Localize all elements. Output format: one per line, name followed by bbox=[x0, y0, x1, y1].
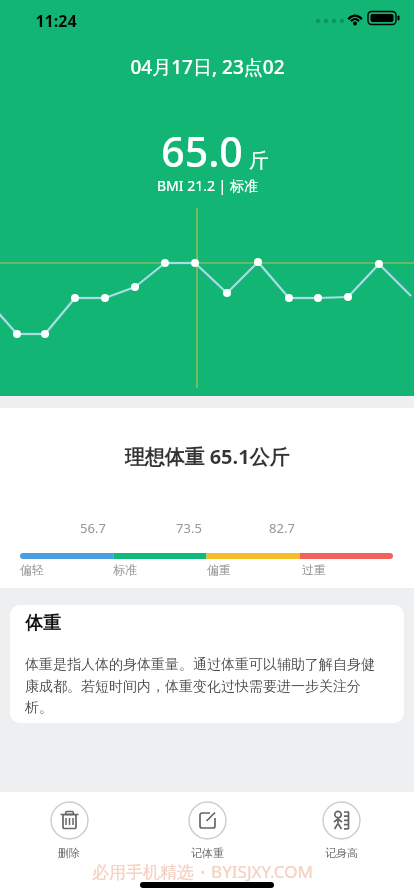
staticText: 理想体重 65.1公斤 bbox=[124, 443, 290, 470]
staticText: 删除 bbox=[58, 846, 80, 860]
staticText: 标准 bbox=[113, 562, 137, 577]
button[interactable]: 删除 bbox=[39, 801, 99, 860]
staticText: 11:24 bbox=[35, 10, 77, 32]
staticText: BMI 21.2 | 标准 bbox=[157, 176, 258, 195]
staticText: 偏轻 bbox=[20, 562, 44, 577]
staticText: 记体重 bbox=[191, 846, 224, 860]
staticText: 斤 bbox=[249, 148, 269, 173]
button[interactable]: 记身高 bbox=[311, 801, 371, 860]
staticText: 体重 bbox=[25, 612, 61, 635]
staticText: 必用手机精选・BYISJXY.COM bbox=[92, 860, 313, 883]
staticText: 56.7 bbox=[80, 519, 106, 537]
staticText: 82.7 bbox=[269, 519, 295, 537]
staticText: 04月17日, 23点02 bbox=[130, 54, 285, 80]
staticText: 65.0 bbox=[161, 123, 243, 179]
staticText: 过重 bbox=[302, 562, 326, 577]
staticText: 体重是指人体的身体重量。通过体重可以辅助了解自身健 康成都。若短时间内，体重变化… bbox=[25, 656, 375, 716]
staticText: 73.5 bbox=[176, 519, 202, 537]
staticText: 记身高 bbox=[325, 846, 358, 860]
button[interactable]: 记体重 bbox=[177, 801, 237, 860]
staticText: 偏重 bbox=[207, 562, 231, 577]
button[interactable]: 体重 bbox=[10, 605, 404, 723]
